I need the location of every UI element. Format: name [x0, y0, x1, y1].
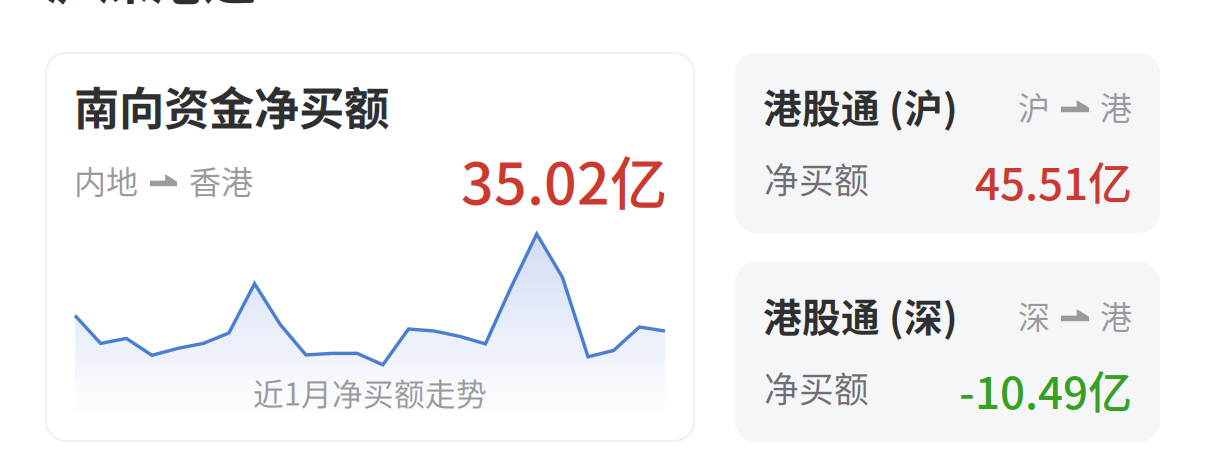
button[interactable]: 港股通 (沪)	[735, 53, 1160, 233]
staticText: 港股通 (沪)	[763, 78, 958, 134]
button[interactable]: 港股通 (深)	[735, 262, 1160, 442]
staticText: 45.51亿	[975, 149, 1132, 213]
staticText: 35.02亿	[461, 138, 667, 221]
staticText: 港	[1100, 292, 1132, 338]
staticText: 近1月净买额走势	[253, 370, 487, 414]
staticText: 港	[1100, 83, 1132, 129]
staticText: 沪深港通	[44, 0, 256, 15]
staticText: 香港	[189, 157, 253, 203]
staticText: -10.49亿	[959, 358, 1132, 422]
staticText: 沪	[1018, 83, 1050, 129]
staticText: 深	[1018, 292, 1050, 338]
staticText: 内地	[74, 157, 138, 203]
button[interactable]: 近1月净买额走势	[46, 53, 694, 441]
staticText: 南向资金净买额	[74, 73, 389, 139]
staticText: 港股通 (深)	[763, 287, 958, 343]
staticText: 净买额	[764, 362, 869, 412]
staticText: 净买额	[764, 153, 869, 203]
